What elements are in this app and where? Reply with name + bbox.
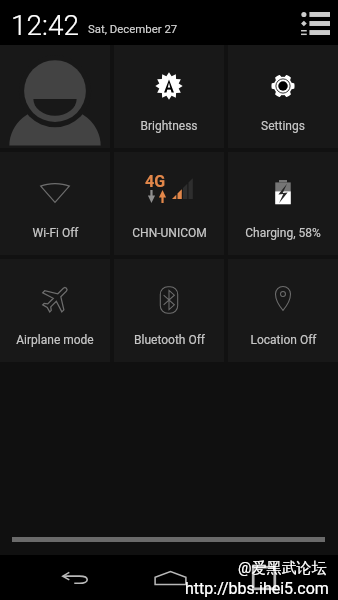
- staticText: 12:42: [11, 9, 80, 42]
- button[interactable]: Brightness: [114, 45, 224, 148]
- staticText: 4G: [145, 172, 166, 191]
- staticText: CHN-UNICOM: [132, 226, 207, 240]
- staticText: http://bbs.ihei5.com: [185, 579, 329, 598]
- button[interactable]: Bluetooth Off: [114, 259, 224, 362]
- staticText: Sat, December 27: [88, 22, 178, 35]
- button[interactable]: Settings: [228, 45, 338, 148]
- button[interactable]: Location Off: [228, 259, 338, 362]
- staticText: Wi-Fi Off: [32, 226, 79, 240]
- button[interactable]: Back: [47, 555, 103, 600]
- button[interactable]: Quick settings: [297, 5, 333, 41]
- staticText: Airplane mode: [16, 333, 94, 347]
- staticText: Brightness: [140, 119, 198, 133]
- button[interactable]: User: [0, 45, 110, 148]
- button[interactable]: 4G: [114, 152, 224, 255]
- button[interactable]: Wi-Fi Off: [0, 152, 110, 255]
- button[interactable]: Charging, 58%: [228, 152, 338, 255]
- staticText: Settings: [261, 119, 305, 133]
- button[interactable]: Airplane mode: [0, 259, 110, 362]
- button[interactable]: Home: [142, 555, 198, 600]
- staticText: Location Off: [250, 333, 317, 347]
- button[interactable]: Recent apps: [236, 555, 292, 600]
- staticText: @爱黑武论坛: [238, 559, 327, 578]
- staticText: Bluetooth Off: [134, 333, 205, 347]
- staticText: Charging, 58%: [245, 226, 321, 240]
